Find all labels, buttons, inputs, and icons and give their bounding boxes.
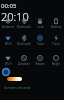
button[interactable]: Bluetooth: [16, 18, 32, 29]
staticText: Wi-Fi: [5, 42, 12, 46]
button[interactable]: Brightness: [7, 77, 22, 81]
button[interactable]: Bluetooth: [16, 35, 32, 46]
button[interactable]: Lock: [32, 18, 48, 29]
staticText: Flash: [52, 42, 60, 46]
staticText: 00:05: [1, 2, 17, 10]
button[interactable]: Airplane: [16, 55, 32, 66]
staticText: Night: [52, 62, 60, 66]
button[interactable]: Wi-Fi: [0, 35, 16, 46]
staticText: Screen record: [4, 85, 30, 90]
staticText: Data: [37, 42, 44, 46]
button[interactable]: Data: [32, 35, 48, 46]
staticText: Bluetooth: [17, 42, 31, 46]
staticText: 20:10: [1, 9, 29, 24]
staticText: Bluetooth: [17, 25, 31, 29]
staticText: Battery: [51, 25, 62, 29]
staticText: Ambient: [2, 25, 14, 29]
staticText: Rotate: [35, 62, 45, 66]
button[interactable]: Night: [48, 55, 64, 66]
staticText: Wi-Fi: [5, 62, 12, 66]
button[interactable]: Battery: [48, 18, 64, 29]
button[interactable]: Play: [2, 68, 10, 76]
staticText: Lock: [37, 25, 44, 29]
button[interactable]: Flash: [48, 35, 64, 46]
button[interactable]: Wi-Fi: [0, 55, 16, 66]
staticText: Airplane: [18, 62, 30, 66]
button[interactable]: Rotate: [32, 55, 48, 66]
button[interactable]: Ambient: [0, 18, 16, 29]
